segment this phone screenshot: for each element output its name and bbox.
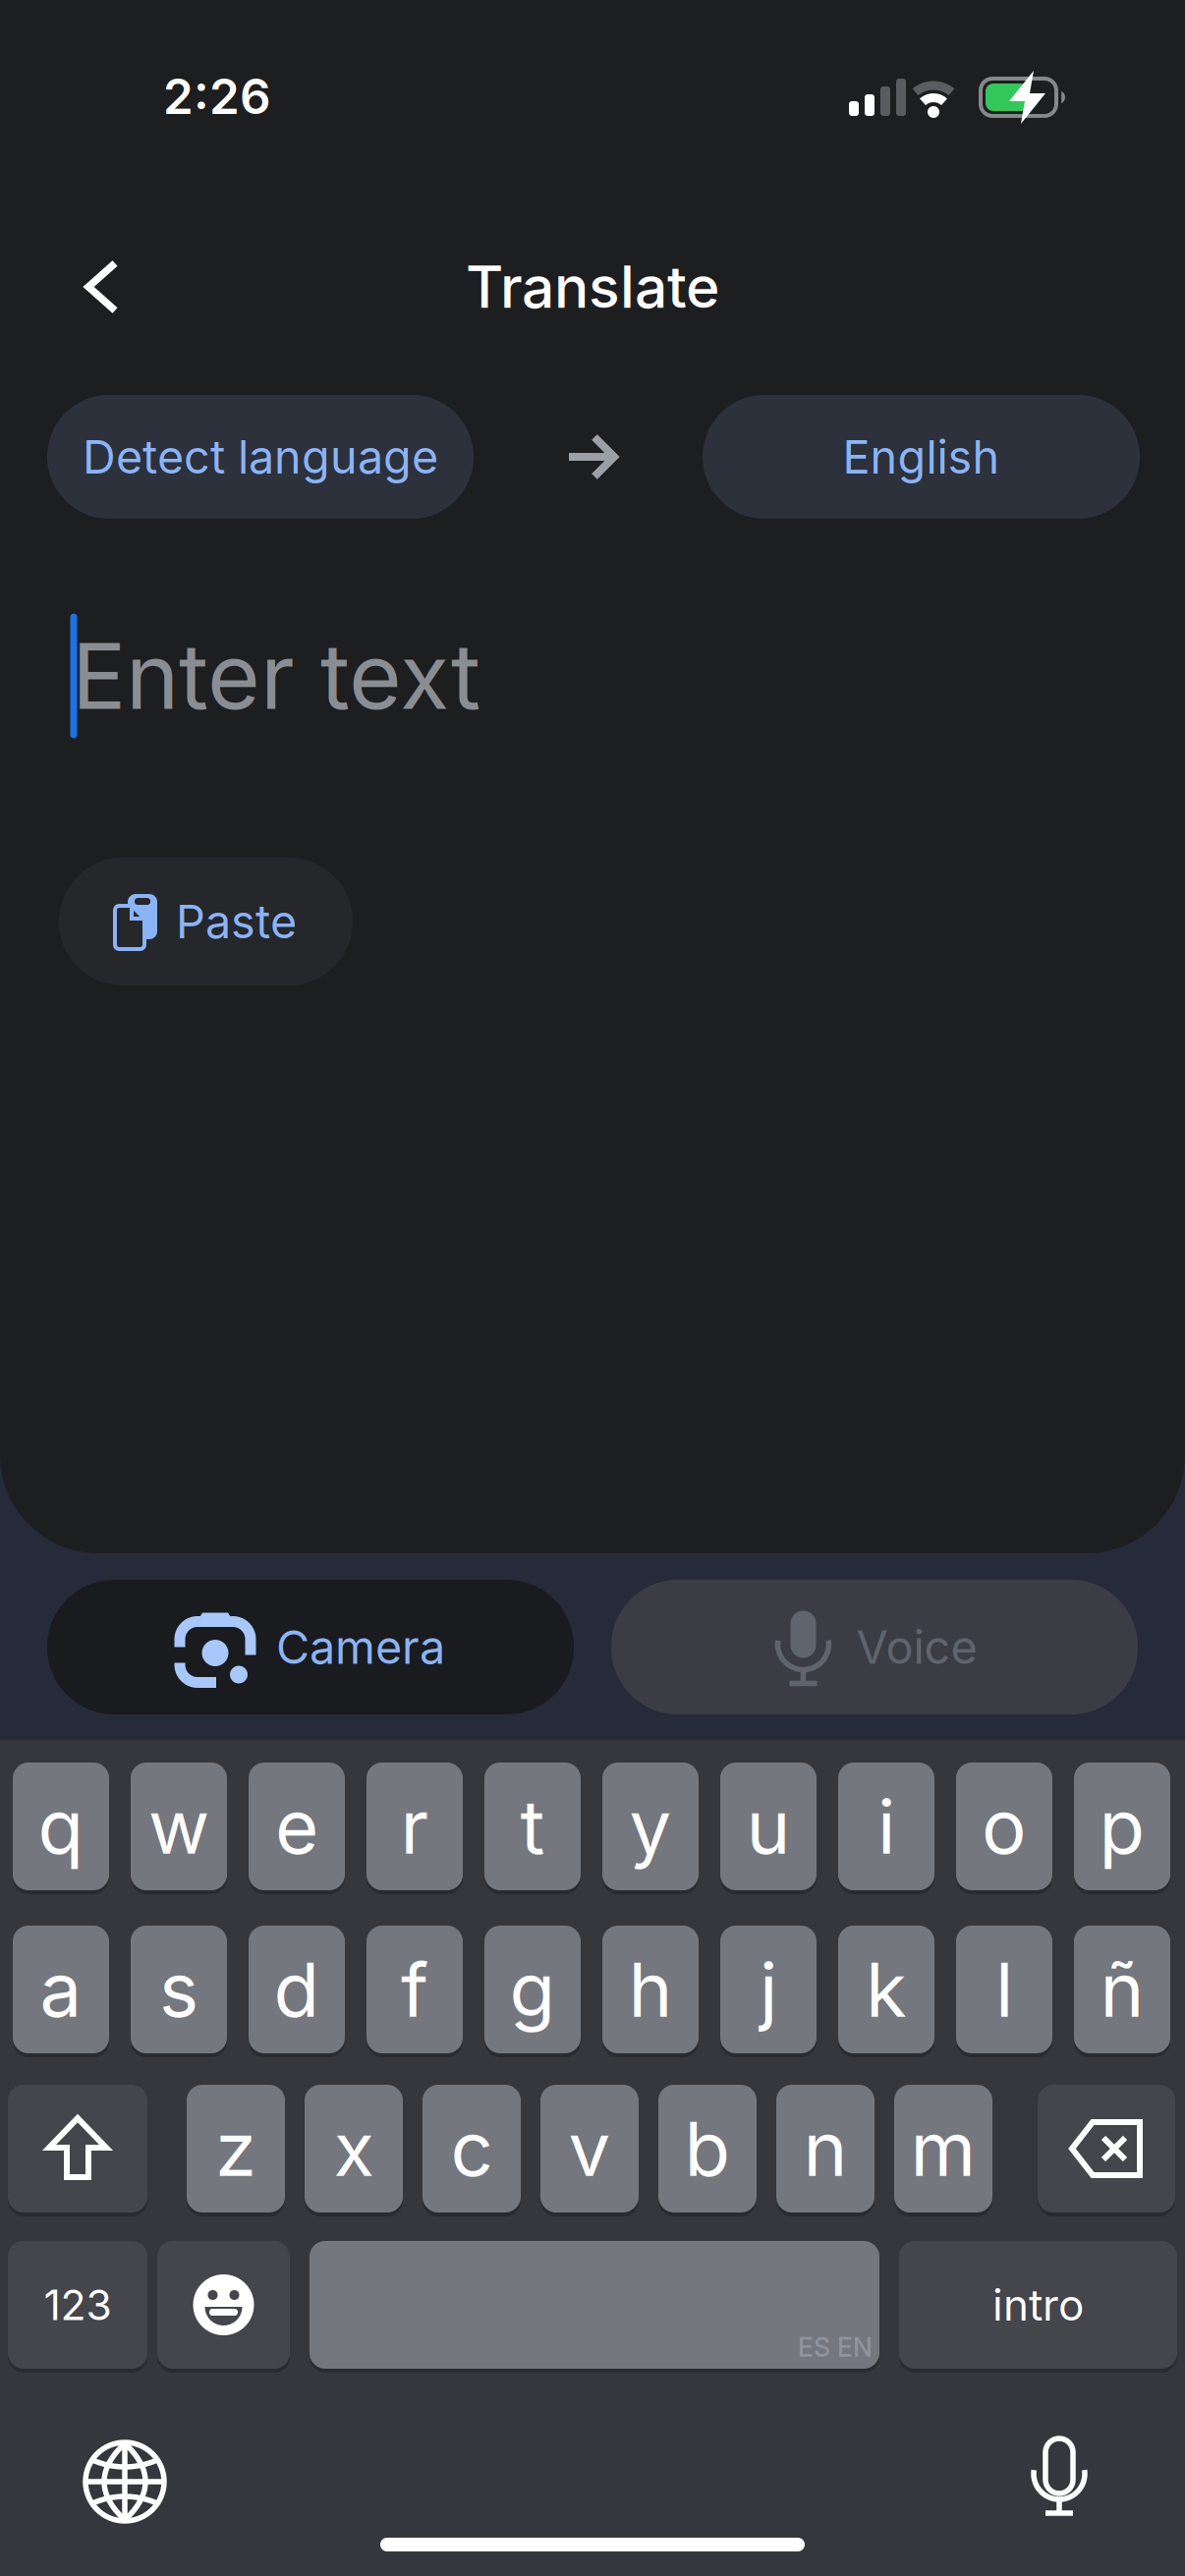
staticText: h xyxy=(628,1945,673,2034)
button[interactable]: Swap languages xyxy=(565,431,618,482)
button[interactable]: Back xyxy=(62,248,141,326)
button[interactable]: r xyxy=(367,1761,463,1892)
button[interactable]: x xyxy=(305,2083,403,2214)
button[interactable]: a xyxy=(13,1924,109,2055)
button[interactable]: English xyxy=(703,395,1140,519)
staticText: b xyxy=(684,2105,731,2193)
button[interactable]: g xyxy=(484,1924,581,2055)
button[interactable]: Paste xyxy=(59,858,353,985)
staticText: v xyxy=(568,2105,611,2193)
staticText: p xyxy=(1099,1782,1145,1870)
staticText: u xyxy=(746,1782,790,1870)
button[interactable]: p xyxy=(1074,1761,1170,1892)
staticText: t xyxy=(520,1782,545,1870)
button[interactable]: i xyxy=(838,1761,934,1892)
button[interactable]: Camera xyxy=(47,1580,574,1714)
button[interactable]: Dictation xyxy=(1020,2428,1099,2526)
staticText: Voice xyxy=(856,1620,977,1674)
staticText: ES EN xyxy=(798,2332,873,2363)
staticText: j xyxy=(760,1945,777,2034)
staticText: q xyxy=(38,1782,84,1870)
button[interactable]: Numbers xyxy=(8,2239,147,2371)
staticText: Detect language xyxy=(83,430,438,484)
button[interactable]: intro xyxy=(899,2239,1177,2371)
button[interactable]: s xyxy=(131,1924,227,2055)
button[interactable]: e xyxy=(249,1761,345,1892)
staticText: c xyxy=(451,2105,493,2193)
button[interactable]: ñ xyxy=(1074,1924,1170,2055)
staticText: f xyxy=(401,1945,428,2034)
button[interactable]: b xyxy=(658,2083,757,2214)
button[interactable]: k xyxy=(838,1924,934,2055)
staticText: x xyxy=(334,2105,374,2193)
button[interactable]: n xyxy=(776,2083,875,2214)
button[interactable]: f xyxy=(367,1924,463,2055)
button[interactable]: w xyxy=(131,1761,227,1892)
staticText: Translate xyxy=(466,253,719,321)
staticText: Enter text xyxy=(72,623,480,729)
staticText: o xyxy=(982,1782,1027,1870)
staticText: Camera xyxy=(276,1620,445,1674)
staticText: a xyxy=(40,1945,82,2034)
staticText: g xyxy=(509,1945,556,2034)
button[interactable]: c xyxy=(423,2083,521,2214)
staticText: 2:26 xyxy=(163,68,271,125)
button[interactable]: u xyxy=(720,1761,817,1892)
button[interactable]: d xyxy=(249,1924,345,2055)
staticText: Paste xyxy=(176,895,297,949)
staticText: w xyxy=(148,1782,209,1870)
button[interactable]: y xyxy=(602,1761,699,1892)
staticText: ñ xyxy=(1100,1945,1144,2034)
button[interactable]: Voice xyxy=(611,1580,1138,1714)
staticText: l xyxy=(995,1945,1013,2034)
button[interactable]: m xyxy=(894,2083,992,2214)
button[interactable]: t xyxy=(484,1761,581,1892)
button[interactable]: j xyxy=(720,1924,817,2055)
staticText: intro xyxy=(992,2279,1084,2330)
button[interactable]: Space xyxy=(310,2239,879,2371)
button[interactable]: Shift xyxy=(8,2083,147,2214)
button[interactable]: h xyxy=(602,1924,699,2055)
button[interactable]: Emoji xyxy=(157,2239,290,2371)
staticText: i xyxy=(877,1782,895,1870)
staticText: n xyxy=(803,2105,847,2193)
button[interactable]: l xyxy=(956,1924,1052,2055)
staticText: s xyxy=(159,1945,198,2034)
button[interactable]: z xyxy=(187,2083,285,2214)
button[interactable]: Delete xyxy=(1038,2083,1175,2214)
staticText: r xyxy=(400,1782,429,1870)
button[interactable]: o xyxy=(956,1761,1052,1892)
staticText: English xyxy=(843,430,1000,484)
staticText: k xyxy=(866,1945,907,2034)
button[interactable]: v xyxy=(540,2083,639,2214)
staticText: z xyxy=(215,2105,256,2193)
staticText: y xyxy=(629,1782,672,1870)
staticText: 123 xyxy=(44,2280,112,2330)
button[interactable]: Next keyboard xyxy=(76,2433,174,2531)
button[interactable]: Detect language xyxy=(47,395,474,519)
staticText: e xyxy=(275,1782,318,1870)
staticText: m xyxy=(910,2105,976,2193)
button[interactable]: q xyxy=(13,1761,109,1892)
staticText: d xyxy=(274,1945,320,2034)
